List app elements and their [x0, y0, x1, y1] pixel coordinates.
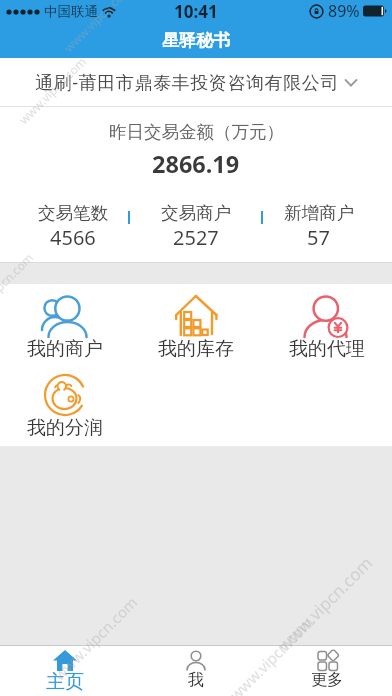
staticText: www.vipcn.com	[15, 53, 90, 127]
button[interactable]: 我的分润	[0, 374, 130, 440]
staticText: 10:41	[174, 0, 218, 22]
staticText: 57	[307, 224, 330, 251]
staticText: www.vipcn.com	[225, 612, 318, 696]
staticText: 星驿秘书	[162, 30, 230, 51]
staticText: 我的代理	[289, 337, 365, 361]
staticText: 通刷-莆田市鼎泰丰投资咨询有限公司	[35, 70, 339, 95]
staticText: 我的分润	[27, 416, 103, 440]
staticText: 中国联通	[44, 3, 98, 20]
staticText: 89%	[328, 0, 360, 22]
staticText: 新增商户	[284, 202, 354, 224]
button[interactable]: 主页	[0, 646, 130, 696]
button[interactable]: 我的库存	[130, 295, 261, 361]
staticText: www.vipcn.com	[49, 592, 142, 684]
staticText: 昨日交易金额（万元）	[109, 121, 284, 143]
staticText: 交易商户	[161, 202, 231, 224]
staticText: 我的商户	[27, 337, 103, 361]
staticText: 我	[188, 670, 204, 690]
button[interactable]: 更多	[261, 646, 392, 696]
staticText: 更多	[311, 670, 343, 690]
staticText: 2527	[173, 224, 219, 251]
staticText: 2866.19	[152, 148, 240, 180]
button[interactable]: 我的代理	[261, 295, 392, 361]
staticText: 主页	[46, 670, 84, 694]
button[interactable]: 通刷-莆田市鼎泰丰投资咨询有限公司	[0, 58, 392, 106]
staticText: www.vipcn.com	[60, 0, 135, 55]
staticText: 交易笔数	[38, 202, 108, 224]
staticText: 4566	[50, 224, 96, 251]
staticText: www.vipcn.com	[272, 551, 378, 656]
staticText: 我的库存	[158, 337, 234, 361]
button[interactable]: 我的商户	[0, 295, 130, 361]
staticText: www.vipcn.com	[0, 249, 37, 323]
button[interactable]: 我	[130, 646, 261, 696]
